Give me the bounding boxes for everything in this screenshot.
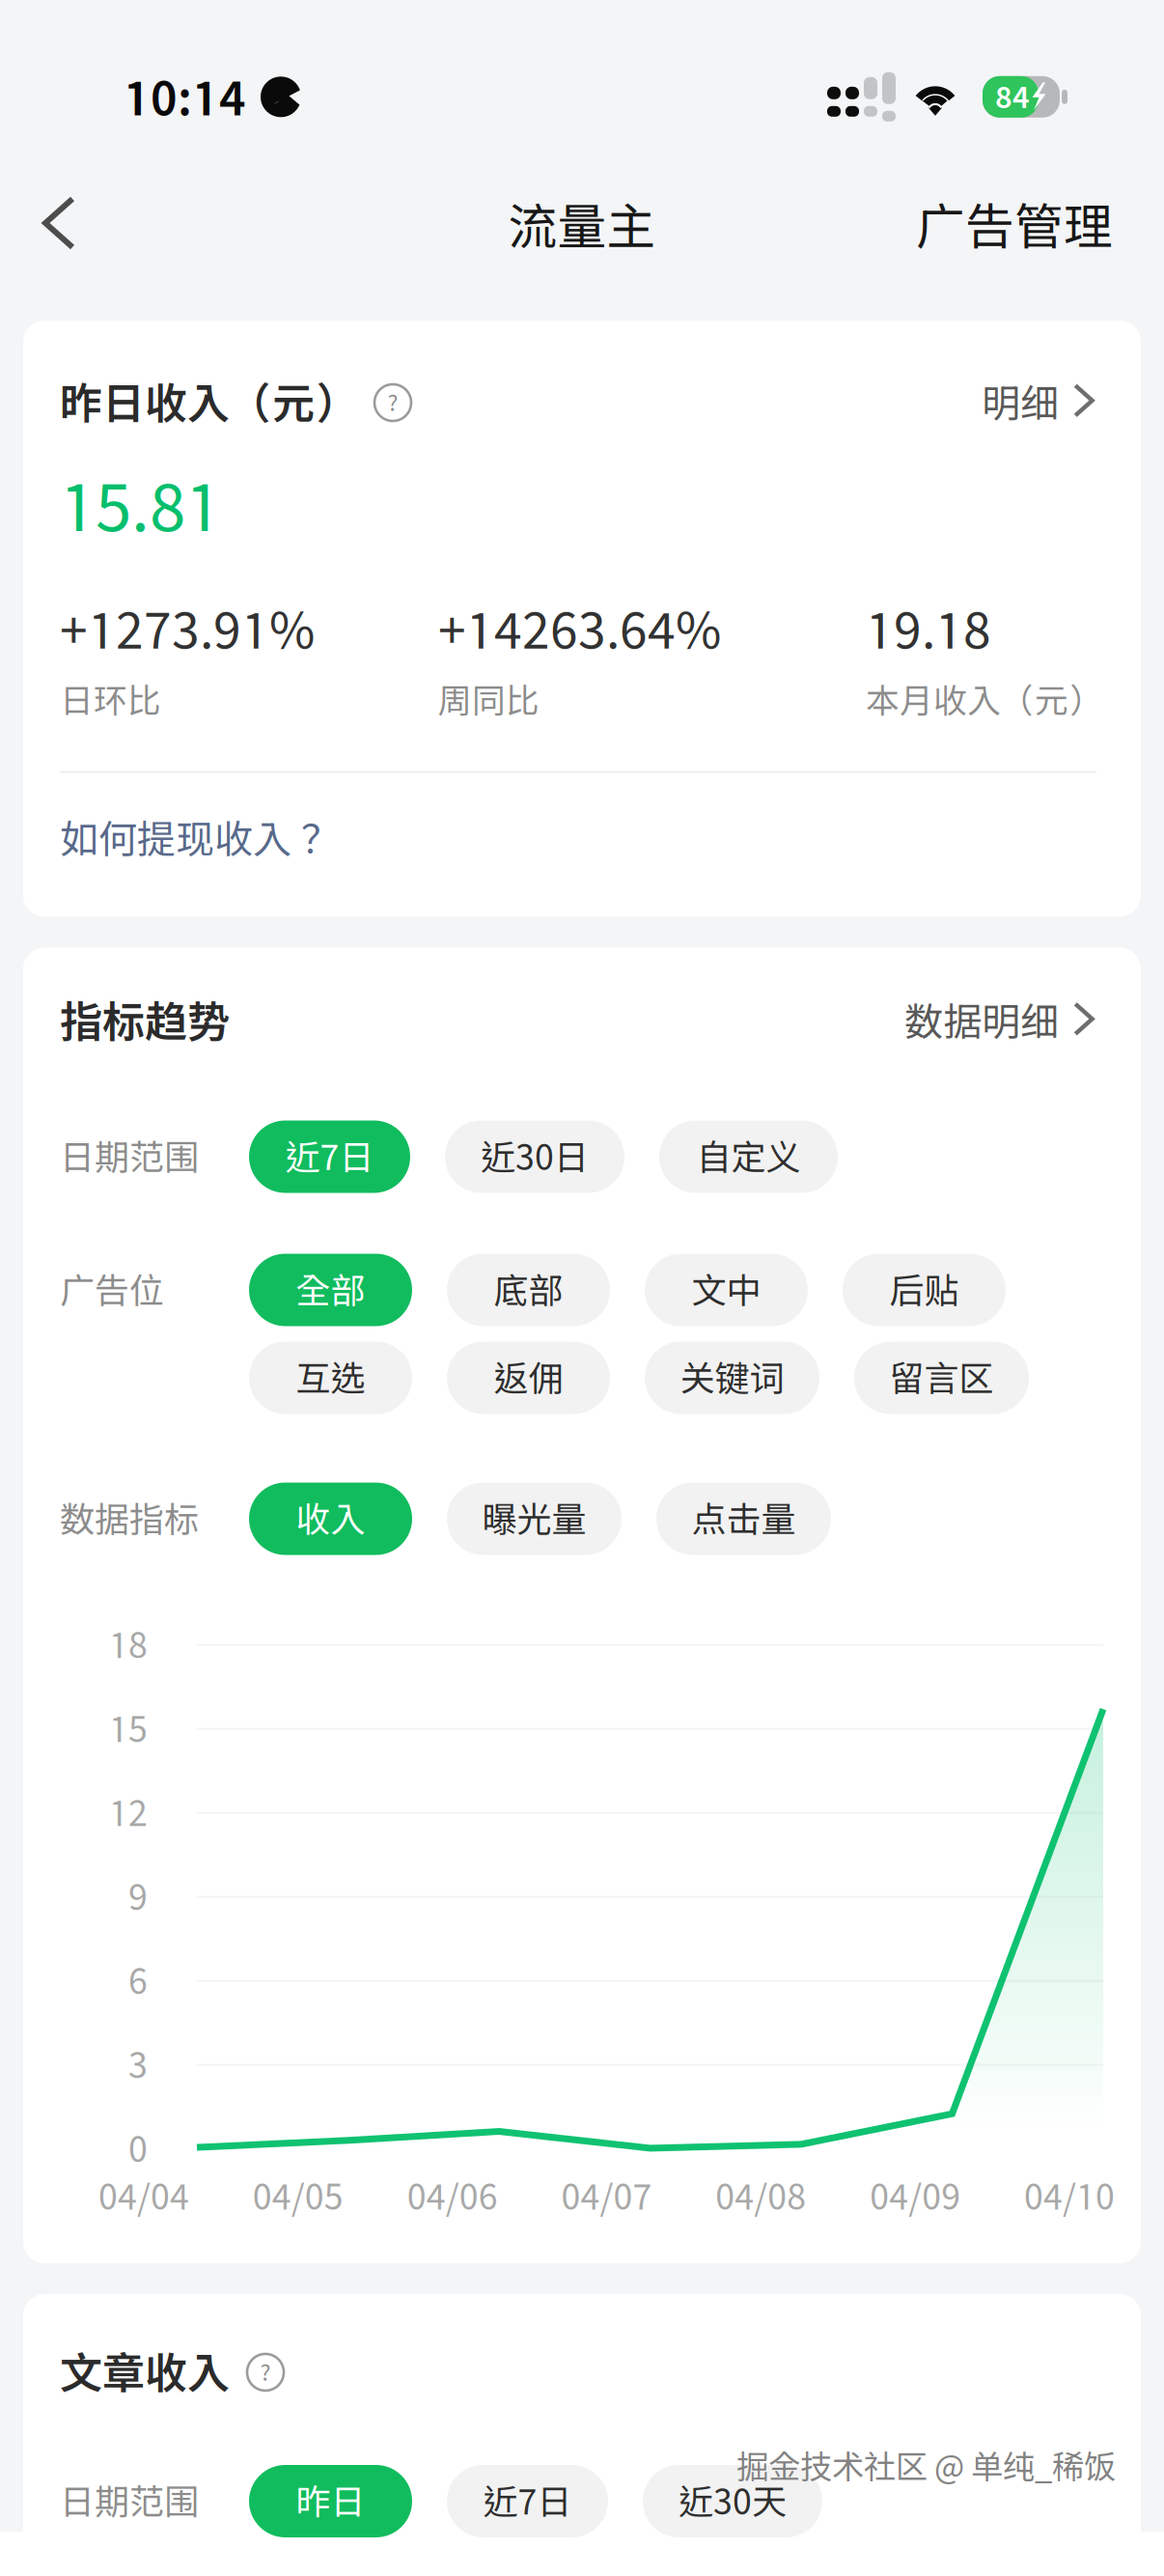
staticText: 9 <box>128 1876 148 1917</box>
staticText: 04/06 <box>407 2176 498 2217</box>
staticText: +14263.64% <box>438 599 721 658</box>
button[interactable]: 近30日 <box>445 1120 624 1193</box>
button[interactable]: 明细 <box>982 372 1096 433</box>
staticText: 留言区 <box>889 1357 994 1398</box>
button[interactable]: 近7日 <box>249 1120 410 1193</box>
staticText: 昨日 <box>296 2481 365 2522</box>
staticText: 15.81 <box>60 466 221 544</box>
staticText: 12 <box>109 1792 148 1833</box>
staticText: 文中 <box>692 1269 761 1310</box>
staticText: 10:14 <box>124 70 246 124</box>
staticText: 返佣 <box>494 1357 563 1398</box>
staticText: 昨日收入（元） <box>60 378 357 428</box>
staticText: 18 <box>109 1624 148 1665</box>
staticText: 点击量 <box>692 1498 796 1539</box>
staticText: 数据指标 <box>60 1498 199 1539</box>
button[interactable]: 全部 <box>249 1254 412 1326</box>
staticText: 19.18 <box>866 599 991 658</box>
staticText: 曝光量 <box>482 1498 586 1539</box>
button[interactable]: 留言区 <box>854 1342 1029 1414</box>
staticText: 指标趋势 <box>60 996 230 1046</box>
button[interactable]: 曝光量 <box>447 1483 622 1555</box>
staticText: 流量主 <box>508 197 656 255</box>
staticText: 15 <box>109 1708 148 1749</box>
staticText: ? <box>260 2359 271 2386</box>
button[interactable]: 数据明细 <box>905 991 1096 1052</box>
staticText: 广告管理 <box>916 197 1113 255</box>
staticText: 6 <box>128 1960 148 2001</box>
button[interactable]: 广告管理 <box>916 180 1113 272</box>
staticText: 近30日 <box>481 1136 589 1177</box>
button[interactable]: 自定义 <box>659 1120 838 1193</box>
staticText: 04/09 <box>870 2176 961 2217</box>
staticText: 数据明细 <box>905 998 1059 1044</box>
button[interactable]: 返回 <box>17 180 106 272</box>
staticText: 04/10 <box>1024 2176 1115 2217</box>
staticText: 周同比 <box>438 680 540 720</box>
staticText: 如何提现收入？ <box>60 816 330 861</box>
staticText: 关键词 <box>680 1357 784 1398</box>
staticText: 全部 <box>296 1269 365 1310</box>
staticText: 3 <box>128 2044 148 2085</box>
button[interactable]: 昨日 <box>249 2465 412 2537</box>
staticText: 04/08 <box>716 2176 806 2217</box>
staticText: 本月收入（元） <box>866 680 1102 720</box>
staticText: 04/05 <box>253 2176 343 2217</box>
staticText: 近7日 <box>483 2481 572 2522</box>
button[interactable]: 文中 <box>645 1254 808 1326</box>
staticText: 04/04 <box>98 2176 189 2217</box>
staticText: 掘金技术社区 @ 单纯_稀饭 <box>736 2447 1116 2485</box>
staticText: 近7日 <box>285 1136 374 1177</box>
staticText: 日期范围 <box>60 2481 199 2522</box>
button[interactable]: 互选 <box>249 1342 412 1414</box>
staticText: 04/07 <box>561 2176 652 2217</box>
staticText: 收入 <box>296 1498 365 1539</box>
button[interactable]: 底部 <box>447 1254 610 1326</box>
staticText: 自定义 <box>696 1136 801 1177</box>
button[interactable]: 近30天 <box>643 2465 822 2537</box>
staticText: 文章收入 <box>60 2347 230 2397</box>
staticText: ? <box>388 389 398 416</box>
staticText: 广告位 <box>60 1269 164 1310</box>
button[interactable]: 收入 <box>249 1483 412 1555</box>
button[interactable]: 点击量 <box>656 1483 831 1555</box>
button[interactable]: 后贴 <box>843 1254 1006 1326</box>
staticText: +1273.91% <box>60 599 315 658</box>
staticText: 0 <box>128 2128 148 2169</box>
button[interactable]: 近7日 <box>447 2465 608 2537</box>
staticText: 明细 <box>982 380 1059 425</box>
staticText: 日期范围 <box>60 1136 199 1177</box>
button[interactable]: 返佣 <box>447 1342 610 1414</box>
staticText: 后贴 <box>889 1269 959 1310</box>
staticText: 84 <box>995 79 1030 114</box>
staticText: 底部 <box>494 1269 563 1310</box>
staticText: 近30天 <box>679 2481 787 2522</box>
button[interactable]: 关键词 <box>645 1342 819 1414</box>
staticText: 日环比 <box>60 680 161 720</box>
staticText: 互选 <box>296 1357 365 1398</box>
button[interactable]: 如何提现收入？ <box>60 773 330 861</box>
